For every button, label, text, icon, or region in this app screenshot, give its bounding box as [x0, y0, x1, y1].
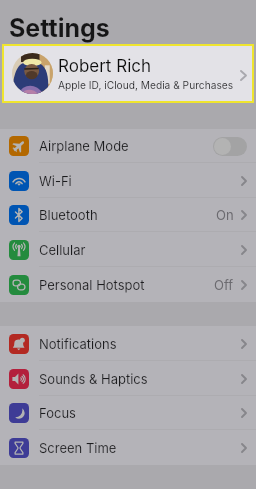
staticText: Wi-Fi [39, 173, 72, 189]
staticText: Bluetooth [39, 207, 98, 223]
staticText: Airplane Mode [39, 138, 129, 154]
staticText: Apple ID, iCloud, Media & Purchases [58, 79, 234, 91]
staticText: Sounds & Haptics [39, 371, 148, 387]
staticText: Notifications [39, 336, 117, 352]
staticText: Screen Time [39, 440, 117, 456]
button[interactable]: Sounds & Haptics [0, 361, 256, 396]
button[interactable]: Cellular [0, 232, 256, 267]
button[interactable]: Robert Rich [4, 46, 252, 101]
staticText: Cellular [39, 242, 86, 258]
staticText: Robert Rich [58, 56, 152, 77]
staticText: Personal Hotspot [39, 277, 145, 293]
button[interactable]: Notifications [0, 326, 256, 361]
staticText: On [216, 207, 234, 223]
staticText: Settings [9, 13, 110, 43]
button[interactable]: Airplane Mode [0, 129, 256, 163]
staticText: Off [214, 277, 234, 293]
button[interactable]: Bluetooth [0, 198, 256, 232]
button[interactable]: Personal Hotspot [0, 267, 256, 302]
button[interactable]: Focus [0, 396, 256, 430]
button[interactable]: Screen Time [0, 430, 256, 465]
staticText: Focus [39, 405, 76, 421]
button[interactable]: Wi-Fi [0, 163, 256, 198]
